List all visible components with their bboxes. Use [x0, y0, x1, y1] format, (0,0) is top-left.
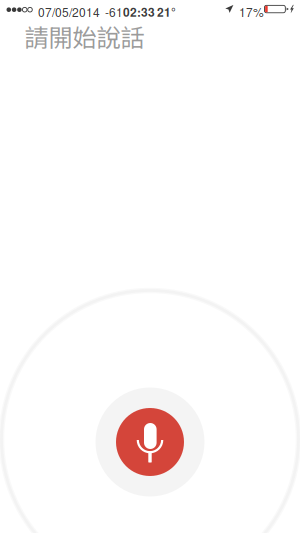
- button[interactable]: Record: [95, 387, 204, 496]
- staticText: 17%: [239, 3, 264, 20]
- staticText: -61: [105, 3, 123, 20]
- staticText: 請開始說話: [25, 19, 145, 54]
- staticText: 21°: [157, 3, 176, 20]
- staticText: 02:33: [123, 3, 155, 20]
- staticText: 07/05/2014: [38, 3, 100, 20]
